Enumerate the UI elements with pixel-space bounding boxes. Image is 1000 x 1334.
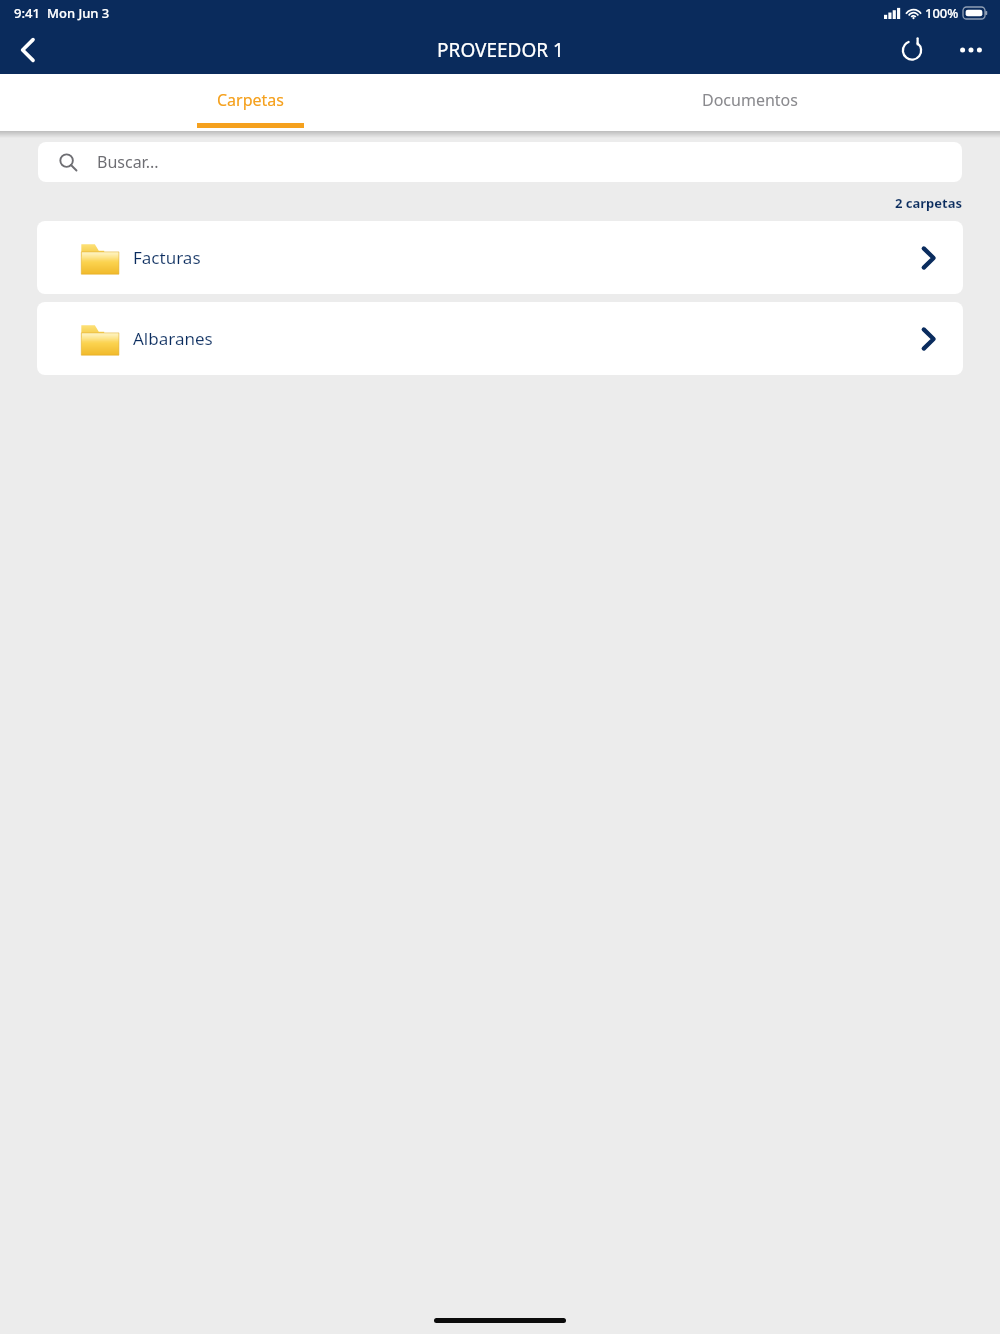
staticText: Mon Jun 3 — [47, 4, 110, 22]
button[interactable]: Documentos — [500, 74, 1000, 131]
button[interactable]: Albaranes — [37, 302, 963, 375]
staticText: 100% — [925, 4, 959, 22]
staticText: Albaranes — [133, 327, 213, 350]
button[interactable]: Carpetas — [0, 74, 500, 131]
staticText: Facturas — [133, 246, 201, 269]
staticText: Carpetas — [217, 89, 284, 111]
button[interactable]: Facturas — [37, 221, 963, 294]
staticText: Documentos — [702, 89, 798, 111]
button[interactable]: Refresh — [882, 26, 942, 74]
button[interactable]: Back — [0, 26, 56, 74]
button[interactable]: Buscar... — [38, 142, 962, 182]
staticText: PROVEEDOR 1 — [437, 37, 564, 63]
staticText: 2 carpetas — [895, 194, 963, 212]
staticText: 9:41 — [14, 4, 40, 22]
button[interactable]: More options — [942, 26, 1000, 74]
staticText: Buscar... — [97, 151, 159, 173]
